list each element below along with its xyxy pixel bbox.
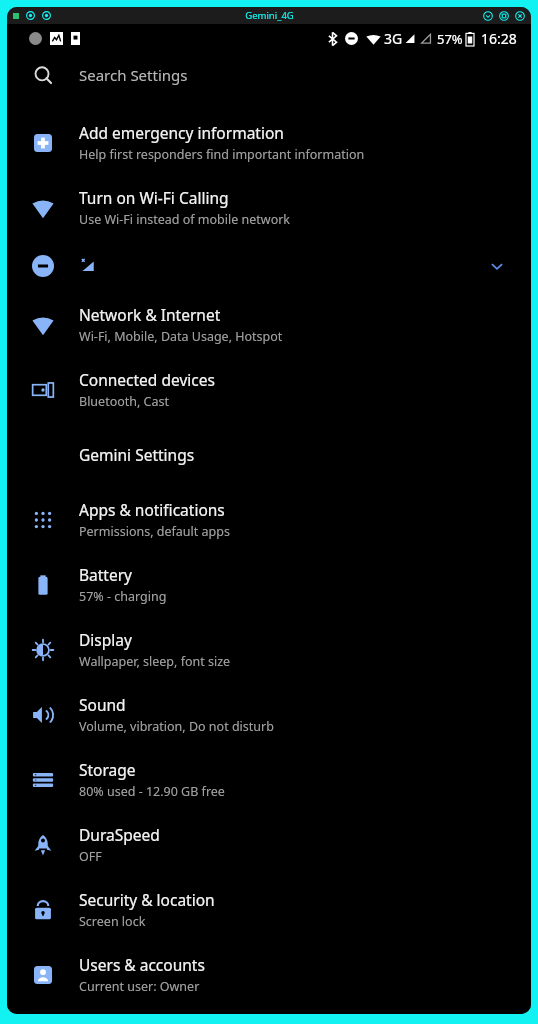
staticText: Search Settings: [79, 65, 188, 85]
staticText: Use Wi-Fi instead of mobile network: [79, 211, 291, 228]
staticText: Network & Internet: [79, 304, 221, 325]
button[interactable]: Add emergency information: [7, 110, 531, 175]
button[interactable]: Search: [7, 52, 531, 98]
staticText: Screen lock: [79, 913, 146, 930]
staticText: DuraSpeed: [79, 824, 160, 845]
button[interactable]: Users & accounts: [7, 942, 531, 1007]
staticText: Gemini_4G: [245, 9, 294, 22]
staticText: Permissions, default apps: [79, 523, 230, 540]
button[interactable]: Storage: [7, 747, 531, 812]
staticText: Turn on Wi-Fi Calling: [79, 187, 229, 208]
button[interactable]: Close: [515, 11, 525, 21]
staticText: Bluetooth, Cast: [79, 393, 170, 410]
staticText: Sound: [79, 694, 126, 715]
button[interactable]: Expand: [7, 240, 531, 292]
staticText: Wallpaper, sleep, font size: [79, 653, 231, 670]
button[interactable]: Minimize: [483, 11, 493, 21]
staticText: 3G: [384, 29, 403, 48]
staticText: Apps & notifications: [79, 499, 225, 520]
button[interactable]: Turn on Wi-Fi Calling: [7, 175, 531, 240]
staticText: Wi-Fi, Mobile, Data Usage, Hotspot: [79, 328, 283, 345]
button[interactable]: Battery: [7, 552, 531, 617]
staticText: 57%: [437, 30, 463, 48]
staticText: Add emergency information: [79, 122, 284, 143]
button[interactable]: Apps & notifications: [7, 487, 531, 552]
button[interactable]: DuraSpeed: [7, 812, 531, 877]
other: Expand: [489, 258, 505, 274]
button[interactable]: Display: [7, 617, 531, 682]
staticText: Connected devices: [79, 369, 215, 390]
staticText: Users & accounts: [79, 954, 205, 975]
staticText: Display: [79, 629, 132, 650]
button[interactable]: Sound: [7, 682, 531, 747]
other: Search: [33, 65, 54, 86]
staticText: Battery: [79, 564, 133, 585]
staticText: Storage: [79, 759, 136, 780]
button[interactable]: Gemini Settings: [7, 422, 531, 487]
staticText: 16:28: [481, 29, 517, 48]
staticText: Gemini Settings: [79, 444, 195, 465]
button[interactable]: Maximize: [499, 11, 509, 21]
button[interactable]: Network & Internet: [7, 292, 531, 357]
staticText: 80% used - 12.90 GB free: [79, 783, 225, 800]
staticText: Security & location: [79, 889, 215, 910]
button[interactable]: Connected devices: [7, 357, 531, 422]
staticText: 57% - charging: [79, 588, 167, 605]
staticText: Help first responders find important inf…: [79, 146, 365, 163]
staticText: OFF: [79, 848, 102, 865]
staticText: Current user: Owner: [79, 978, 200, 995]
staticText: Volume, vibration, Do not disturb: [79, 718, 274, 735]
button[interactable]: Security & location: [7, 877, 531, 942]
